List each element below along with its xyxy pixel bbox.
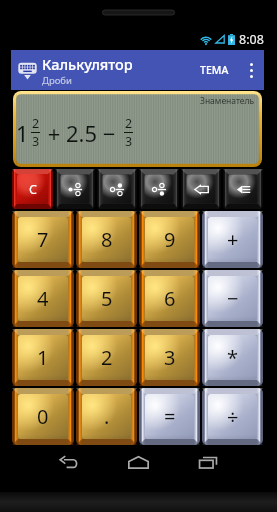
- button[interactable]: Clear: [12, 169, 53, 209]
- button[interactable]: 4: [12, 270, 74, 327]
- staticText: 3: [164, 344, 176, 371]
- button[interactable]: 7: [12, 211, 74, 268]
- button[interactable]: To decimal: [55, 169, 95, 209]
- staticText: 2: [101, 344, 113, 371]
- staticText: −: [227, 285, 239, 312]
- button[interactable]: *: [202, 329, 263, 386]
- button[interactable]: ТЕМА: [191, 53, 238, 87]
- button[interactable]: 3: [139, 329, 200, 386]
- button[interactable]: 5: [76, 270, 137, 327]
- button[interactable]: More options: [238, 50, 264, 90]
- staticText: 2: [32, 115, 40, 132]
- staticText: Калькулятор: [42, 54, 133, 74]
- button[interactable]: +: [202, 211, 263, 268]
- button[interactable]: ÷: [202, 388, 263, 445]
- button[interactable]: −: [202, 270, 263, 327]
- button[interactable]: 0: [12, 388, 74, 445]
- button[interactable]: Clear entry: [223, 169, 263, 209]
- staticText: Знаменатель: [200, 95, 255, 107]
- staticText: 1: [37, 344, 49, 371]
- staticText: 1: [16, 118, 29, 148]
- staticText: *: [227, 344, 239, 371]
- staticText: 7: [37, 226, 49, 253]
- staticText: + 2.5 −: [42, 118, 122, 148]
- staticText: 2: [125, 115, 133, 132]
- button[interactable]: To improper fraction: [139, 169, 179, 209]
- button[interactable]: 1: [12, 329, 74, 386]
- button[interactable]: 8: [76, 211, 137, 268]
- staticText: .: [104, 403, 110, 430]
- staticText: ÷: [227, 403, 239, 430]
- staticText: +: [227, 226, 239, 253]
- staticText: 8:08: [239, 31, 264, 48]
- staticText: ТЕМА: [200, 63, 229, 77]
- staticText: 0: [37, 403, 49, 430]
- button[interactable]: 2: [76, 329, 137, 386]
- button[interactable]: 9: [139, 211, 200, 268]
- button[interactable]: Backspace: [181, 169, 221, 209]
- staticText: 3: [32, 133, 40, 150]
- button[interactable]: .: [76, 388, 137, 445]
- button[interactable]: Home: [103, 446, 173, 478]
- button[interactable]: Change calculator mode: [13, 56, 41, 84]
- staticText: C: [29, 181, 37, 198]
- staticText: 3: [125, 133, 133, 150]
- staticText: 8: [101, 226, 113, 253]
- staticText: 9: [164, 226, 176, 253]
- staticText: 6: [164, 285, 176, 312]
- button[interactable]: Back: [33, 446, 103, 478]
- staticText: 4: [37, 285, 49, 312]
- staticText: =: [164, 403, 176, 430]
- button[interactable]: To mixed fraction: [97, 169, 137, 209]
- staticText: 5: [101, 285, 113, 312]
- button[interactable]: =: [139, 388, 200, 445]
- staticText: Дроби: [42, 74, 72, 87]
- button[interactable]: 6: [139, 270, 200, 327]
- button[interactable]: Recent apps: [173, 446, 243, 478]
